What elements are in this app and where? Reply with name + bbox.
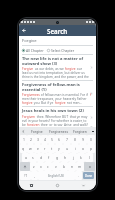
button[interactable]: k xyxy=(77,153,85,162)
staticText: The new life is not a matter of outward … xyxy=(22,56,90,66)
staticText: be xyxy=(22,123,27,126)
button[interactable]: q xyxy=(20,144,27,153)
button[interactable]: Forgiveness of fellow-man is essential (… xyxy=(22,81,93,106)
button[interactable]: Back xyxy=(70,181,96,190)
staticText: not men... xyxy=(66,101,83,105)
button[interactable]: o xyxy=(79,144,87,153)
staticText: m xyxy=(78,164,82,169)
staticText: 2 xyxy=(30,137,32,142)
button[interactable]: 8 xyxy=(71,135,79,144)
button[interactable]: j xyxy=(69,153,77,162)
staticText: thee; or, to say, Arise, and walk? But f… xyxy=(40,123,90,126)
staticText: . xyxy=(78,173,79,178)
staticText: thee. Wherefore xyxy=(36,115,62,119)
button[interactable]: 2 xyxy=(27,135,34,144)
button[interactable]: d xyxy=(37,153,45,162)
button[interactable]: r xyxy=(41,144,48,153)
button[interactable]: English (US) xyxy=(38,171,75,180)
staticText: z xyxy=(33,164,35,169)
staticText: Search xyxy=(47,27,68,35)
button[interactable]: c xyxy=(44,162,52,171)
button[interactable]: 3 xyxy=(34,135,41,144)
button[interactable]: All Chapter xyxy=(22,48,44,53)
button[interactable]: s xyxy=(29,153,37,162)
button[interactable]: Forgiven xyxy=(69,128,90,135)
button[interactable]: w xyxy=(27,144,34,153)
button[interactable]: i xyxy=(71,144,79,153)
staticText: n xyxy=(71,164,74,169)
staticText: lead us not into temptation, but deliver… xyxy=(22,71,90,75)
staticText: 0 xyxy=(90,137,92,142)
staticText: English (US) xyxy=(48,174,65,178)
button[interactable]: y xyxy=(55,144,63,153)
staticText: i xyxy=(75,146,76,151)
button[interactable]: Navigate back xyxy=(20,26,29,35)
staticText: Forgive xyxy=(22,38,37,44)
button[interactable]: h xyxy=(61,153,69,162)
button[interactable]: Recents xyxy=(19,181,44,190)
button[interactable]: m xyxy=(76,162,84,171)
staticText: All Chapter xyxy=(26,48,44,53)
button[interactable]: Shift xyxy=(20,162,30,171)
button[interactable]: u xyxy=(63,144,71,153)
button[interactable]: Select Chapter xyxy=(47,48,75,53)
staticText: y xyxy=(58,146,60,151)
button[interactable]: Forgive xyxy=(26,128,48,135)
staticText: Done xyxy=(85,174,93,178)
button[interactable]: 5 xyxy=(48,135,55,144)
button[interactable]: t xyxy=(48,144,55,153)
staticText: Forgiveness xyxy=(49,129,69,134)
button[interactable]: b xyxy=(60,162,68,171)
staticText: r xyxy=(44,146,46,151)
button[interactable]: 4 xyxy=(41,135,48,144)
button[interactable]: x xyxy=(37,162,44,171)
button[interactable]: The new life is not a matter of outward … xyxy=(22,55,93,80)
button[interactable]: p xyxy=(87,144,95,153)
staticText: 1 xyxy=(23,137,25,142)
staticText: b xyxy=(63,164,66,169)
button[interactable]: Search xyxy=(83,172,94,179)
button[interactable]: Forgiveness xyxy=(48,128,69,135)
button[interactable]: ?1 xyxy=(20,171,31,180)
staticText: that ye may know xyxy=(69,115,90,119)
button[interactable]: 6 xyxy=(55,135,63,144)
button[interactable]: More options xyxy=(90,128,95,135)
staticText: g xyxy=(56,155,59,160)
button[interactable]: l xyxy=(85,153,93,162)
staticText: x xyxy=(40,164,42,169)
button[interactable]: 1 xyxy=(20,135,27,144)
button[interactable]: 9 xyxy=(79,135,87,144)
staticText: , xyxy=(34,173,35,178)
staticText: a xyxy=(25,155,27,160)
staticText: Forgiveness of fellow-man is essential (… xyxy=(22,82,90,92)
button[interactable]: 0 xyxy=(87,135,95,144)
staticText: ?1 xyxy=(24,174,28,178)
button[interactable]: g xyxy=(53,153,61,162)
staticText: evil in your hearts? For whether is easi… xyxy=(22,119,90,123)
staticText: Forgiven xyxy=(22,115,36,119)
staticText: 4 xyxy=(44,137,46,142)
staticText: v xyxy=(55,164,57,169)
button[interactable]: a xyxy=(22,153,29,162)
staticText: BUT xyxy=(62,115,69,119)
staticText: Jesus heals in his own town (2) xyxy=(22,108,84,114)
staticText: q xyxy=(22,146,25,151)
button[interactable]: Home xyxy=(44,181,70,190)
button[interactable]: , xyxy=(31,171,38,180)
button[interactable]: e xyxy=(34,144,41,153)
button[interactable]: Backspace xyxy=(84,162,95,171)
staticText: t xyxy=(51,146,53,151)
button[interactable]: z xyxy=(30,162,37,171)
staticText: 9 xyxy=(82,137,84,142)
button[interactable]: More suggestions left xyxy=(20,128,26,135)
staticText: h xyxy=(64,155,67,160)
button[interactable]: Jesus heals in his own town (2) xyxy=(22,107,93,127)
button[interactable]: 7 xyxy=(63,135,71,144)
staticText: forgive xyxy=(22,101,33,105)
button[interactable]: v xyxy=(52,162,60,171)
button[interactable]: f xyxy=(45,153,53,162)
button[interactable]: n xyxy=(68,162,76,171)
staticText: p xyxy=(90,146,93,151)
staticText: e xyxy=(37,146,39,151)
